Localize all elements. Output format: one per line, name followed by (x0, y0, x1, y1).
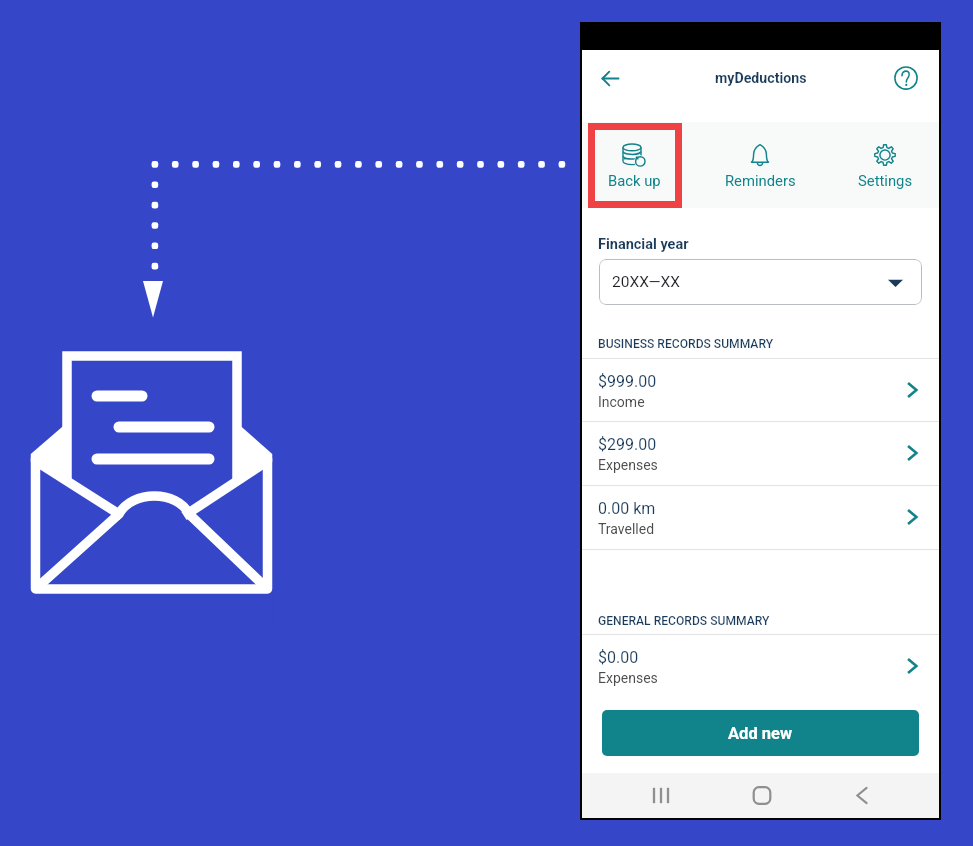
staticText: Financial year (598, 236, 689, 253)
button[interactable]: $299.00 (582, 421, 939, 485)
staticText: Add new (728, 724, 793, 743)
staticText: Income (598, 394, 645, 410)
staticText: myDeductions (715, 70, 807, 87)
staticText: GENERAL RECORDS SUMMARY (598, 614, 770, 628)
button[interactable]: Settings (838, 122, 932, 208)
staticText: Expenses (598, 457, 658, 473)
button[interactable]: Reminders (713, 122, 807, 208)
staticText: Settings (858, 172, 913, 189)
button[interactable]: Back (590, 58, 630, 98)
button[interactable]: Back up (587, 122, 681, 208)
button[interactable]: 20XX—XX (599, 259, 922, 305)
staticText: $0.00 (598, 648, 639, 667)
button[interactable]: Help (886, 58, 926, 98)
button[interactable]: $999.00 (582, 358, 939, 421)
button[interactable]: Home (732, 773, 792, 818)
button[interactable]: Back (832, 773, 892, 818)
staticText: 20XX—XX (612, 273, 681, 291)
staticText: BUSINESS RECORDS SUMMARY (598, 337, 774, 351)
button[interactable]: 0.00 km (582, 485, 939, 549)
staticText: Reminders (725, 172, 796, 189)
staticText: Expenses (598, 670, 658, 686)
staticText: Back up (608, 172, 661, 189)
button[interactable]: Add new (602, 710, 919, 756)
staticText: Travelled (598, 521, 655, 537)
staticText: $999.00 (598, 372, 657, 391)
button[interactable]: $0.00 (582, 634, 939, 698)
staticText: $299.00 (598, 435, 657, 454)
staticText: 0.00 km (598, 499, 656, 518)
button[interactable]: Recent apps (631, 773, 691, 818)
